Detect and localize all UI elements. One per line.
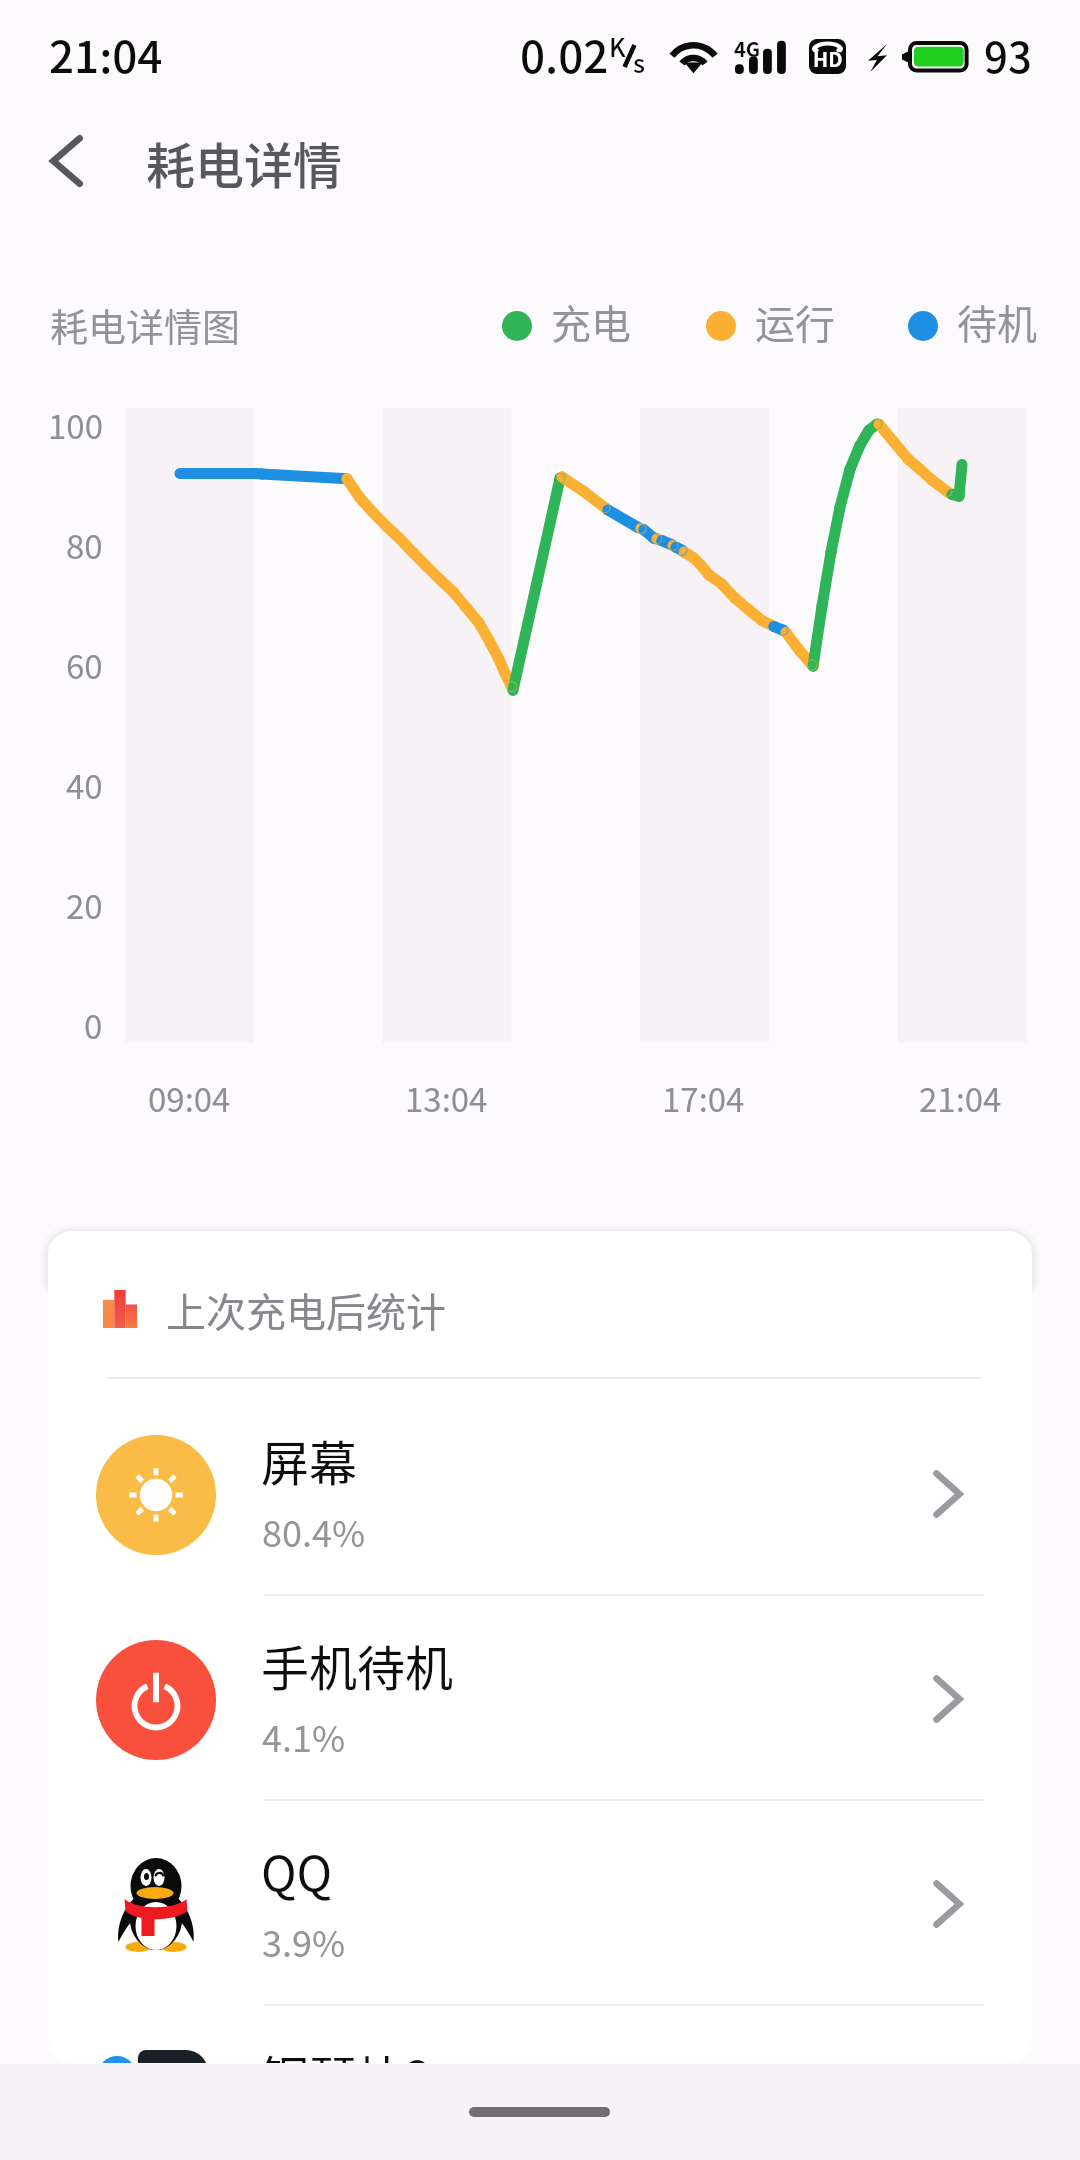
staticText: 耗电详情图 xyxy=(50,297,241,352)
staticText: 屏幕 xyxy=(261,1425,358,1495)
staticText: 80 xyxy=(66,521,103,569)
staticText: 手机待机 xyxy=(261,1630,454,1700)
button[interactable]: 屏幕 xyxy=(48,1392,1032,1597)
button[interactable]: Back xyxy=(23,118,109,204)
staticText: HD xyxy=(813,44,843,73)
staticText: 21:04 xyxy=(919,1074,1002,1122)
staticText: 0 xyxy=(84,1001,103,1049)
button[interactable]: 手机待机 xyxy=(48,1597,1032,1802)
staticText: 40 xyxy=(66,761,103,809)
staticText: 钢琴块2 xyxy=(261,2040,432,2063)
button[interactable]: 钢琴块2 xyxy=(48,2007,1032,2063)
staticText: 09:04 xyxy=(148,1074,231,1122)
staticText: 93 xyxy=(984,24,1032,85)
staticText: 充电 xyxy=(551,293,631,351)
staticText: 80.4% xyxy=(262,1505,366,1557)
staticText: QQ xyxy=(261,1835,333,1905)
staticText: 上次充电后统计 xyxy=(166,1281,446,1339)
staticText: 60 xyxy=(66,641,103,689)
staticText: 20 xyxy=(66,881,103,929)
staticText: 100 xyxy=(48,401,103,449)
staticText: 待机 xyxy=(957,293,1037,351)
staticText: 21:04 xyxy=(49,22,163,86)
staticText: 运行 xyxy=(755,293,835,351)
button[interactable]: QQ xyxy=(48,1802,1032,2007)
staticText: 4G xyxy=(734,34,761,63)
staticText: 17:04 xyxy=(662,1074,745,1122)
staticText: 耗电详情 xyxy=(146,127,343,198)
staticText: s xyxy=(633,44,646,80)
staticText: K xyxy=(609,28,626,64)
staticText: 3.9% xyxy=(262,1915,346,1967)
staticText: 0.02 xyxy=(520,22,609,86)
staticText: 13:04 xyxy=(405,1074,488,1122)
staticText: 4.1% xyxy=(262,1710,346,1762)
